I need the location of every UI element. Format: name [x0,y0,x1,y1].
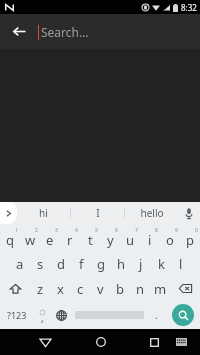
staticText: k [158,255,165,273]
button[interactable]: w [20,226,40,251]
button[interactable]: m [150,276,170,301]
staticText: 1 [15,227,18,234]
button[interactable]: Emoji and comma [33,301,51,329]
button[interactable]: l [171,251,191,276]
staticText: g [97,255,105,273]
button[interactable]: Shift [0,276,30,301]
button[interactable]: n [130,276,150,301]
button[interactable]: Backspace [170,276,200,301]
staticText: q [6,231,14,249]
staticText: 9 [175,227,178,234]
button[interactable]: hi [17,202,70,224]
button[interactable]: z [30,276,50,301]
button[interactable]: c [70,276,90,301]
button[interactable]: a [9,251,30,276]
staticText: b [116,280,124,298]
button[interactable]: Home [87,329,114,355]
staticText: 5 [95,227,98,234]
staticText: x [57,280,64,298]
staticText: z [37,280,44,298]
staticText: m [154,280,167,298]
button[interactable]: x [50,276,70,301]
staticText: I [96,206,100,220]
staticText: 6 [115,227,118,234]
staticText: a [16,255,24,273]
staticText: p [186,231,194,249]
staticText: e [46,231,54,249]
button[interactable]: Back [0,14,38,49]
staticText: 0 [195,227,198,234]
staticText: y [107,231,114,249]
button[interactable]: Search… [38,14,200,49]
staticText: 8 [155,227,158,234]
staticText: . [155,308,158,322]
staticText: 2 [35,227,38,234]
button[interactable]: Search [172,304,194,326]
staticText: ?123 [7,309,27,321]
button[interactable]: h [111,251,131,276]
staticText: 7 [135,227,138,234]
button[interactable]: v [90,276,110,301]
staticText: Search… [41,24,89,40]
button[interactable]: q [0,226,20,251]
button[interactable]: i [140,226,160,251]
button[interactable]: Recent apps [141,329,168,355]
button[interactable]: e [40,226,60,251]
staticText: c [77,280,84,298]
button[interactable]: t [80,226,100,251]
staticText: r [67,231,73,249]
staticText: hello [140,206,164,220]
button[interactable]: hello [125,202,178,224]
button[interactable]: Change language [51,301,72,329]
button[interactable]: . [147,301,165,329]
staticText: o [166,231,174,249]
staticText: f [79,255,84,273]
button[interactable]: o [160,226,180,251]
button[interactable]: ?123 [0,301,33,329]
button[interactable]: f [71,251,91,276]
staticText: hi [39,206,48,220]
button[interactable]: I [71,202,124,224]
button[interactable]: k [151,251,171,276]
button[interactable]: Back [31,329,59,355]
staticText: 8:32 [181,2,197,13]
staticText: j [139,255,143,273]
button[interactable]: Hide keyboard [168,329,195,355]
button[interactable]: s [30,251,51,276]
button[interactable]: u [120,226,140,251]
staticText: v [97,280,104,298]
staticText: u [126,231,135,249]
staticText: h [117,255,126,273]
button[interactable]: r [60,226,80,251]
button[interactable]: p [180,226,200,251]
staticText: i [148,231,152,249]
button[interactable]: y [100,226,120,251]
button[interactable]: More suggestions [0,202,17,224]
button[interactable]: Space [72,301,147,329]
staticText: d [57,255,65,273]
staticText: 3 [55,227,58,234]
button[interactable]: b [110,276,130,301]
staticText: s [37,255,44,273]
button[interactable]: g [91,251,111,276]
staticText: 4 [75,227,78,234]
button[interactable]: d [51,251,71,276]
button[interactable]: Voice input [178,202,200,224]
staticText: , [41,311,44,325]
button[interactable]: j [131,251,151,276]
staticText: l [179,255,183,273]
staticText: w [25,231,36,249]
staticText: n [136,280,145,298]
staticText: t [88,231,93,249]
